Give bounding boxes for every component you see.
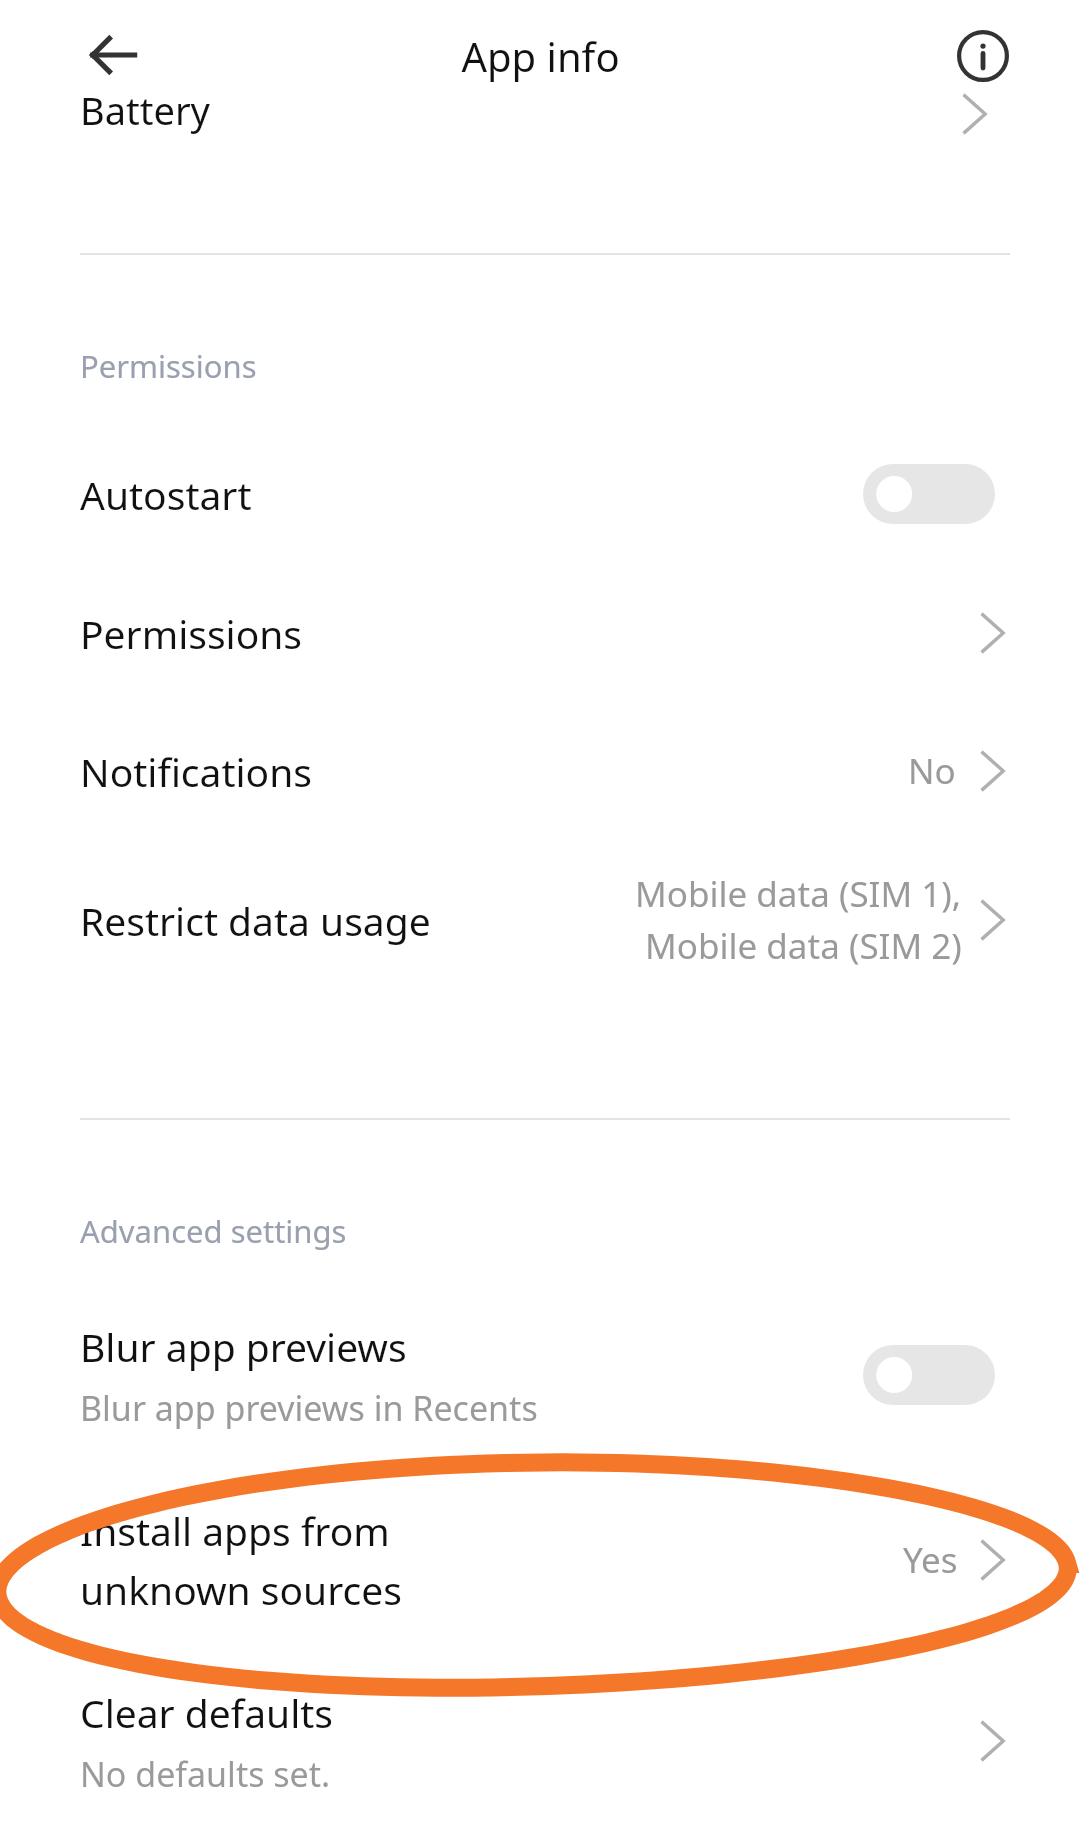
staticText: App info: [461, 29, 620, 83]
staticText: Restrict data usage: [80, 894, 431, 947]
staticText: Battery: [80, 84, 210, 136]
button[interactable]: App details: [941, 14, 1025, 98]
button[interactable]: Blur app previews: [0, 1290, 1080, 1460]
staticText: No: [908, 747, 956, 795]
staticText: Install apps from: [80, 1504, 390, 1557]
staticText: Clear defaults: [80, 1686, 334, 1739]
staticText: Notifications: [80, 745, 312, 798]
staticText: Mobile data (SIM 2): [645, 922, 962, 970]
staticText: Blur app previews in Recents: [80, 1385, 538, 1431]
staticText: Permissions: [80, 607, 303, 660]
staticText: Advanced settings: [80, 1210, 347, 1252]
staticText: Yes: [903, 1536, 958, 1584]
staticText: Autostart: [80, 468, 252, 521]
button[interactable]: Toggle: [863, 464, 995, 524]
button[interactable]: Install apps from: [0, 1470, 1080, 1650]
button[interactable]: Autostart: [0, 424, 1080, 564]
staticText: No defaults set.: [80, 1751, 331, 1797]
staticText: Mobile data (SIM 1),: [635, 870, 962, 918]
staticText: Permissions: [80, 345, 257, 387]
button[interactable]: Toggle: [863, 1345, 995, 1405]
button[interactable]: Notifications: [0, 702, 1080, 840]
button[interactable]: Clear defaults: [0, 1660, 1080, 1822]
button[interactable]: Restrict data usage: [0, 840, 1080, 1000]
button[interactable]: Permissions: [0, 564, 1080, 702]
button[interactable]: Battery: [0, 112, 1080, 172]
staticText: unknown sources: [80, 1563, 402, 1616]
button[interactable]: Back: [73, 15, 153, 95]
staticText: Blur app previews: [80, 1320, 407, 1373]
